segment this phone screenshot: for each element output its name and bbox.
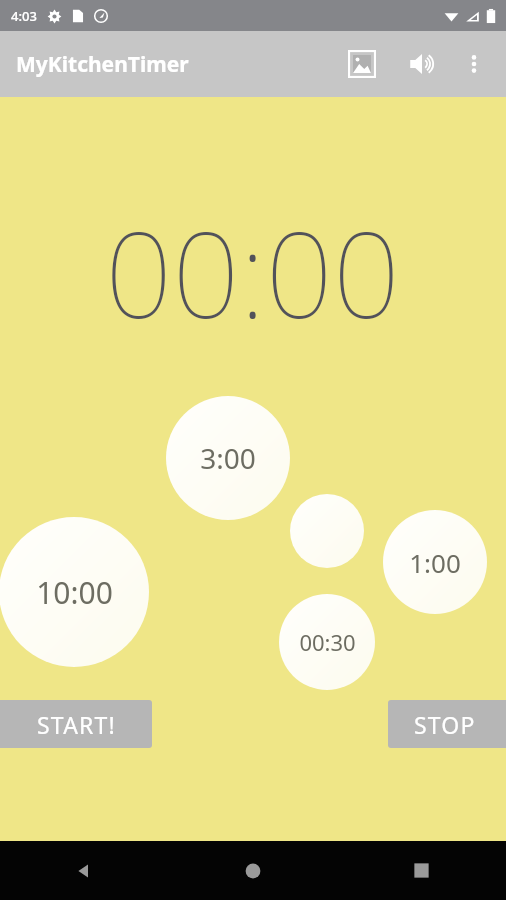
staticText: 00:30 <box>299 627 356 657</box>
button[interactable]: Home <box>168 841 337 900</box>
button[interactable]: STOP <box>388 700 506 748</box>
button[interactable]: More options <box>450 40 498 88</box>
button[interactable]: 1:00 <box>383 510 487 614</box>
button[interactable]: 00:30 <box>279 594 375 690</box>
button[interactable]: Pick image <box>338 40 386 88</box>
staticText: MyKitchenTimer <box>16 50 189 79</box>
button[interactable]: 10:00 <box>0 517 149 667</box>
button[interactable]: START! <box>0 700 152 748</box>
button[interactable]: Timer preset <box>290 494 364 568</box>
staticText: 00:00 <box>105 192 401 353</box>
staticText: 4:03 <box>11 7 37 25</box>
button[interactable]: Sound <box>398 40 446 88</box>
staticText: STOP <box>414 709 476 740</box>
button[interactable]: Back <box>0 841 168 900</box>
staticText: 3:00 <box>200 439 256 477</box>
staticText: START! <box>37 709 116 740</box>
button[interactable]: 3:00 <box>166 396 290 520</box>
staticText: 1:00 <box>409 545 461 580</box>
button[interactable]: Recent apps <box>337 841 506 900</box>
staticText: 10:00 <box>36 572 113 613</box>
